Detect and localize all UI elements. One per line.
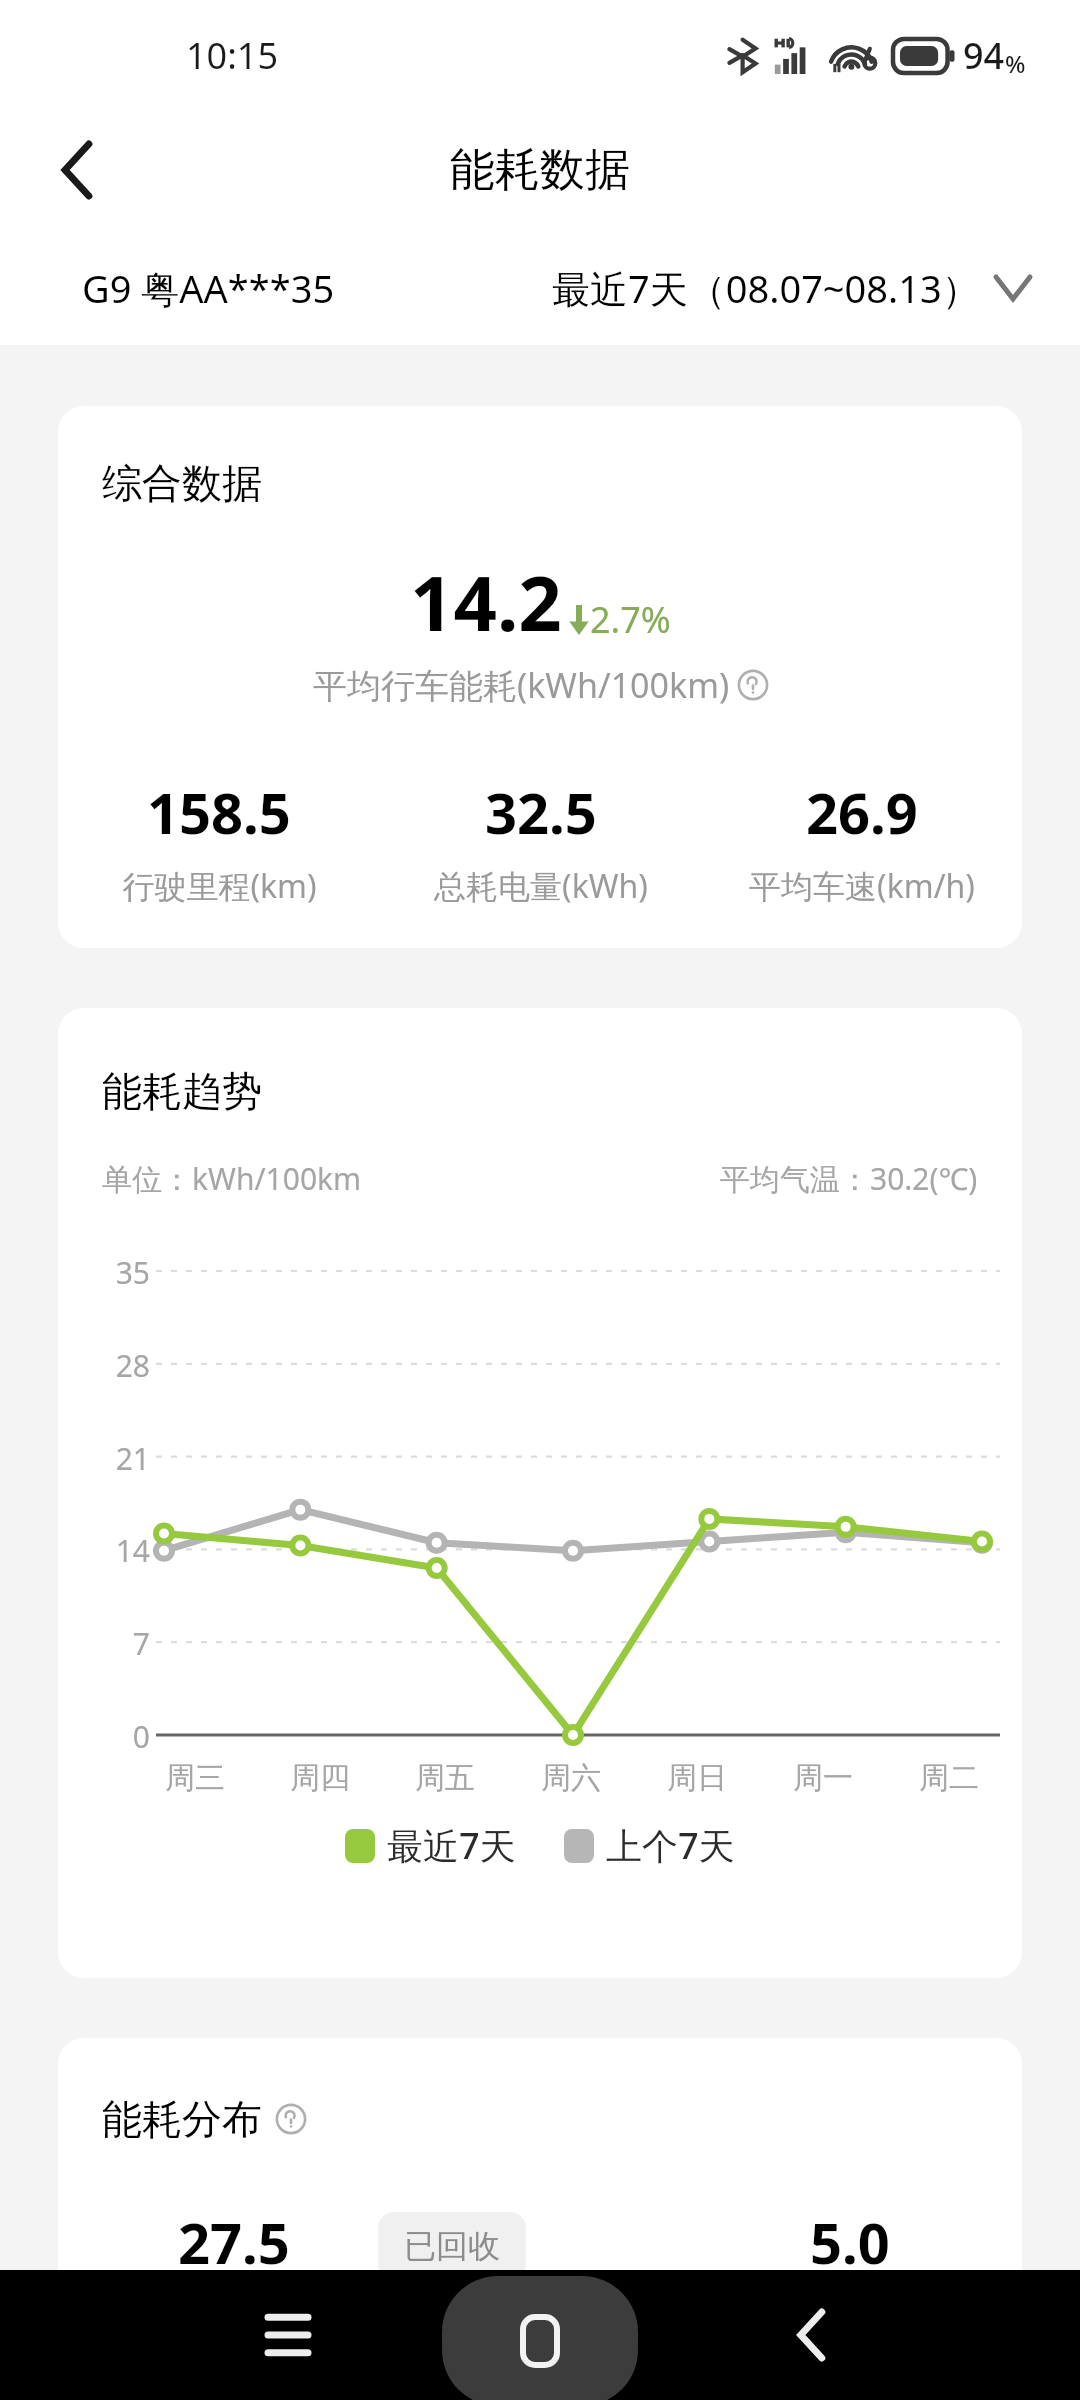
staticText: 平均车速(km/h) [749,864,975,908]
staticText: 周五 [415,1759,475,1797]
staticText: 10:15 [186,31,279,80]
staticText: 周二 [919,1759,979,1797]
staticText: 7 [58,1623,150,1664]
staticText: 单位：kWh/100km [102,1158,362,1199]
button[interactable]: 综合数据 [58,406,1022,948]
button[interactable]: 能耗趋势 [58,1008,1022,1978]
staticText: 综合数据 [102,458,262,508]
staticText: 能耗分布 [102,2094,262,2144]
staticText: 14 [58,1530,150,1571]
staticText: 32.5 [485,774,597,850]
staticText: 35 [58,1252,150,1293]
staticText: 上个7天 [606,1821,735,1870]
button[interactable]: 主屏幕 [442,2276,638,2400]
staticText: G9 粤AA***35 [82,262,335,314]
button[interactable]: 32.5 [380,774,701,908]
staticText: 已回收 [404,2226,500,2266]
staticText: 周四 [290,1759,350,1797]
staticText: 2.7% [590,595,671,644]
staticText: 5.0 [810,2204,890,2280]
button[interactable]: 返回 [764,2287,860,2383]
staticText: 14.2 [410,550,562,654]
button[interactable]: 26.9 [701,774,1022,908]
button[interactable]: 能耗分布 [58,2038,1022,2400]
staticText: 26.9 [806,774,918,850]
staticText: 行驶里程(km) [122,864,317,908]
button[interactable]: 最近7天（08.07~08.13） [542,250,1040,326]
staticText: 平均行车能耗(kWh/100km) [313,662,730,708]
staticText: 0 [58,1716,150,1757]
button[interactable]: 已回收 [378,2212,526,2280]
staticText: 27.5 [178,2204,290,2280]
button[interactable]: 最近7天 [341,1817,520,1874]
staticText: 21 [58,1438,150,1479]
staticText: 能耗数据 [450,142,630,199]
button[interactable]: 返回 [30,122,126,218]
staticText: 158.5 [147,774,291,850]
staticText: 能耗趋势 [102,1066,262,1116]
staticText: 总耗电量(kWh) [434,864,648,908]
staticText: 周日 [667,1759,727,1797]
staticText: 周三 [165,1759,225,1797]
staticText: 94 [963,31,1005,80]
staticText: 最近7天（08.07~08.13） [552,262,980,314]
staticText: 周六 [541,1759,601,1797]
button[interactable]: 最近任务 [240,2287,336,2383]
button[interactable]: 158.5 [58,774,380,908]
staticText: 周一 [793,1759,853,1797]
button[interactable]: 上个7天 [560,1817,739,1874]
staticText: % [1005,47,1026,80]
staticText: 最近7天 [387,1821,516,1870]
staticText: 28 [58,1345,150,1386]
staticText: 平均气温：30.2(℃) [720,1158,978,1199]
